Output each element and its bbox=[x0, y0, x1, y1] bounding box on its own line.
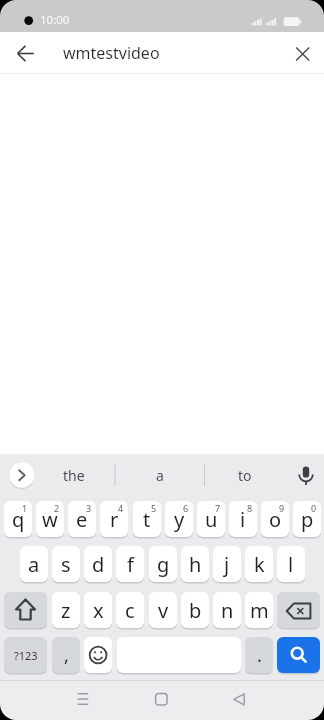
staticText: m bbox=[250, 597, 269, 624]
button[interactable]: the bbox=[44, 458, 104, 492]
staticText: r bbox=[110, 506, 119, 533]
button[interactable]: , bbox=[52, 637, 80, 674]
staticText: 1 bbox=[22, 502, 28, 514]
staticText: 8 bbox=[247, 502, 253, 514]
staticText: 6 bbox=[183, 502, 189, 514]
staticText: k bbox=[254, 551, 265, 578]
button[interactable] bbox=[145, 684, 177, 716]
staticText: u bbox=[205, 506, 218, 533]
staticText: f bbox=[127, 551, 134, 578]
button[interactable]: l bbox=[277, 546, 305, 583]
staticText: s bbox=[61, 551, 71, 578]
staticText: n bbox=[221, 597, 234, 624]
staticText: a bbox=[156, 466, 164, 485]
staticText: e bbox=[76, 506, 88, 533]
staticText: x bbox=[93, 597, 104, 624]
staticText: g bbox=[157, 551, 170, 578]
staticText: j bbox=[224, 551, 230, 578]
button[interactable] bbox=[4, 592, 47, 629]
staticText: l bbox=[288, 551, 294, 578]
staticText: , bbox=[64, 643, 69, 668]
staticText: 5 bbox=[151, 502, 157, 514]
staticText: q bbox=[12, 506, 25, 533]
button[interactable]: i bbox=[229, 501, 257, 538]
button[interactable]: c bbox=[116, 592, 144, 629]
button[interactable]: k bbox=[245, 546, 273, 583]
staticText: a bbox=[28, 551, 40, 578]
button[interactable]: ?123 bbox=[4, 637, 47, 674]
button[interactable] bbox=[283, 34, 323, 72]
staticText: y bbox=[174, 506, 185, 533]
button[interactable]: to bbox=[215, 458, 275, 492]
staticText: 10:00 bbox=[40, 12, 70, 28]
button[interactable]: s bbox=[52, 546, 80, 583]
button[interactable]: t bbox=[133, 501, 161, 538]
button[interactable]: n bbox=[213, 592, 241, 629]
button[interactable]: p bbox=[293, 501, 321, 538]
staticText: 4 bbox=[118, 502, 124, 514]
staticText: i bbox=[240, 506, 246, 533]
staticText: w bbox=[42, 506, 58, 533]
button[interactable]: j bbox=[213, 546, 241, 583]
button[interactable]: f bbox=[116, 546, 144, 583]
staticText: the bbox=[63, 466, 85, 485]
button[interactable] bbox=[288, 458, 322, 492]
staticText: t bbox=[143, 506, 151, 533]
button[interactable]: w bbox=[36, 501, 64, 538]
button[interactable]: o bbox=[261, 501, 289, 538]
button[interactable] bbox=[117, 637, 241, 674]
button[interactable]: v bbox=[149, 592, 177, 629]
staticText: v bbox=[158, 597, 169, 624]
button[interactable]: m bbox=[245, 592, 273, 629]
staticText: d bbox=[92, 551, 105, 578]
button[interactable]: r bbox=[100, 501, 128, 538]
button[interactable]: q bbox=[4, 501, 32, 538]
staticText: 0 bbox=[311, 502, 317, 514]
button[interactable]: h bbox=[181, 546, 209, 583]
staticText: z bbox=[61, 597, 71, 624]
staticText: ?123 bbox=[14, 648, 38, 663]
staticText: o bbox=[269, 506, 282, 533]
button[interactable] bbox=[277, 637, 320, 674]
staticText: b bbox=[189, 597, 202, 624]
button[interactable]: u bbox=[197, 501, 225, 538]
button[interactable]: z bbox=[52, 592, 80, 629]
button[interactable]: a bbox=[20, 546, 48, 583]
button[interactable] bbox=[84, 637, 112, 674]
staticText: h bbox=[189, 551, 202, 578]
button[interactable]: g bbox=[149, 546, 177, 583]
staticText: c bbox=[125, 597, 135, 624]
button[interactable] bbox=[277, 592, 320, 629]
button[interactable]: e bbox=[68, 501, 96, 538]
staticText: . bbox=[257, 643, 262, 668]
button[interactable] bbox=[222, 684, 254, 716]
button[interactable] bbox=[6, 34, 46, 72]
button[interactable]: d bbox=[84, 546, 112, 583]
staticText: 7 bbox=[215, 502, 221, 514]
staticText: 9 bbox=[279, 502, 285, 514]
staticText: to bbox=[238, 466, 252, 485]
button[interactable] bbox=[7, 460, 37, 490]
button[interactable] bbox=[67, 684, 99, 716]
staticText: p bbox=[301, 506, 314, 533]
button[interactable]: b bbox=[181, 592, 209, 629]
button[interactable]: y bbox=[165, 501, 193, 538]
button[interactable]: a bbox=[130, 458, 190, 492]
staticText: wmtestvideo bbox=[63, 42, 160, 64]
button[interactable]: x bbox=[84, 592, 112, 629]
staticText: 2 bbox=[54, 502, 60, 514]
staticText: 3 bbox=[86, 502, 92, 514]
button[interactable]: . bbox=[245, 637, 273, 674]
